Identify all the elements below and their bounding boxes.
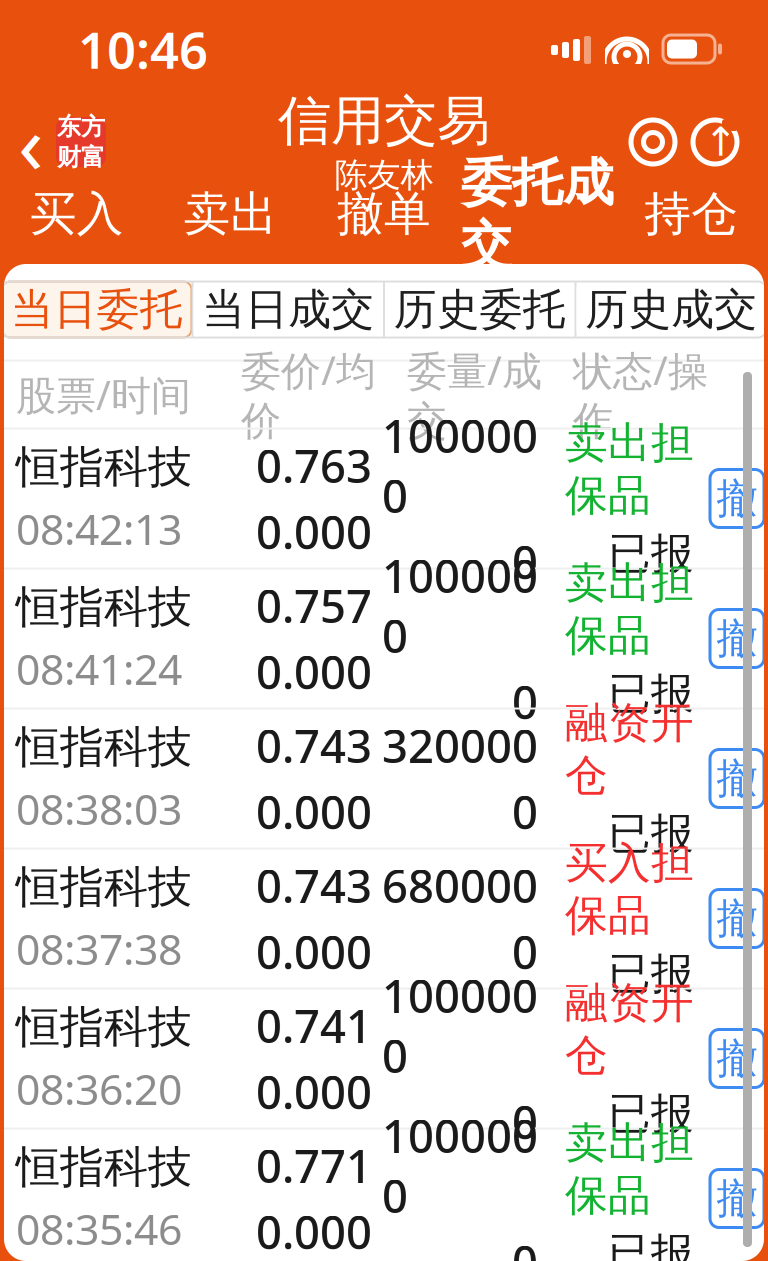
- staticText: 0.743: [256, 855, 372, 915]
- staticText: 0: [512, 781, 538, 842]
- button[interactable]: 撤: [710, 1169, 764, 1227]
- staticText: 融资开仓: [565, 977, 694, 1082]
- staticText: 撤: [716, 893, 757, 944]
- staticText: 委价/均价: [241, 343, 376, 446]
- staticText: 1000000: [382, 405, 538, 526]
- staticText: 历史委托: [394, 283, 566, 336]
- staticText: 已报: [608, 808, 694, 860]
- staticText: 恒指科技: [16, 580, 192, 634]
- staticText: 信用交易: [278, 88, 490, 154]
- staticText: 1000000: [382, 1105, 538, 1226]
- staticText: 0.000: [256, 1201, 372, 1261]
- button[interactable]: 设置: [622, 111, 684, 173]
- staticText: 东方: [57, 112, 105, 141]
- button[interactable]: 撤: [710, 749, 764, 807]
- staticText: 委量/成交: [407, 343, 542, 446]
- staticText: 卖出: [183, 185, 277, 243]
- staticText: 0.743: [256, 715, 372, 775]
- staticText: 已报: [608, 1228, 694, 1261]
- staticText: 持仓: [644, 185, 738, 243]
- staticText: 0.000: [256, 641, 372, 702]
- button[interactable]: 撤: [710, 609, 764, 667]
- staticText: 历史成交: [585, 283, 757, 336]
- button[interactable]: 恒指科技: [0, 989, 768, 1127]
- staticText: 0.771: [256, 1135, 372, 1195]
- button[interactable]: 当日成交: [193, 281, 383, 337]
- staticText: 1000000: [382, 545, 538, 666]
- button[interactable]: 委托成交: [461, 186, 614, 264]
- staticText: 撤: [716, 473, 757, 524]
- staticText: 08:35:46: [16, 1200, 182, 1257]
- staticText: 已报: [608, 1088, 694, 1140]
- button[interactable]: 持仓: [614, 186, 768, 264]
- staticText: 0.763: [256, 435, 372, 495]
- staticText: 680000: [382, 855, 538, 915]
- button[interactable]: 恒指科技: [0, 1129, 768, 1261]
- staticText: 08:38:03: [16, 780, 182, 837]
- staticText: 恒指科技: [16, 1140, 192, 1194]
- button[interactable]: 卖出: [154, 186, 307, 264]
- staticText: 1000000: [382, 965, 538, 1086]
- staticText: 撤: [716, 613, 757, 664]
- staticText: 恒指科技: [16, 720, 192, 774]
- staticText: 恒指科技: [16, 860, 192, 914]
- button[interactable]: 刷新: [684, 111, 746, 173]
- staticText: 当日成交: [202, 283, 374, 336]
- staticText: 0.000: [256, 921, 372, 982]
- staticText: 卖出担保品: [565, 417, 694, 522]
- staticText: 买入: [30, 185, 124, 243]
- staticText: 当日委托: [11, 283, 183, 336]
- staticText: 08:42:13: [16, 500, 182, 557]
- button[interactable]: 恒指科技: [0, 849, 768, 987]
- staticText: 0.741: [256, 995, 372, 1055]
- staticText: 状态/操作: [573, 343, 708, 446]
- staticText: 撤: [716, 1033, 757, 1084]
- button[interactable]: 恒指科技: [0, 709, 768, 847]
- staticText: 0: [512, 532, 538, 592]
- staticText: 0.000: [256, 1061, 372, 1122]
- staticText: 撤单: [337, 185, 431, 243]
- staticText: 320000: [382, 715, 538, 775]
- button[interactable]: 撤: [710, 1029, 764, 1087]
- staticText: 已报: [608, 948, 694, 1000]
- staticText: ↑: [704, 119, 738, 165]
- staticText: 0: [512, 1092, 538, 1152]
- button[interactable]: 返回: [0, 102, 120, 182]
- staticText: 卖出担保品: [565, 1117, 694, 1222]
- staticText: 恒指科技: [16, 1000, 192, 1054]
- staticText: 08:41:24: [16, 640, 182, 697]
- button[interactable]: 撤单: [307, 186, 461, 264]
- staticText: 卖出担保品: [565, 557, 694, 662]
- staticText: 陈友林: [334, 155, 433, 196]
- staticText: 撤: [716, 1173, 757, 1224]
- button[interactable]: 恒指科技: [0, 569, 768, 707]
- staticText: 股票/时间: [16, 368, 191, 421]
- staticText: 0: [512, 672, 538, 732]
- staticText: 08:37:38: [16, 920, 182, 977]
- button[interactable]: 撤: [710, 889, 764, 947]
- staticText: 0.000: [256, 781, 372, 842]
- staticText: 财富: [57, 142, 105, 172]
- button[interactable]: 历史委托: [385, 281, 574, 337]
- staticText: 委托成交: [461, 152, 614, 276]
- staticText: 已报: [608, 668, 694, 720]
- staticText: ‹: [18, 87, 44, 197]
- button[interactable]: 历史成交: [576, 281, 766, 337]
- staticText: 融资开仓: [565, 697, 694, 802]
- staticText: 撤: [716, 753, 757, 804]
- staticText: 0.757: [256, 575, 372, 635]
- staticText: 0: [512, 921, 538, 982]
- staticText: 已报: [608, 528, 694, 580]
- staticText: 0.000: [256, 501, 372, 562]
- button[interactable]: 当日委托: [2, 281, 191, 337]
- button[interactable]: 撤: [710, 469, 764, 527]
- button[interactable]: 买入: [0, 186, 154, 264]
- staticText: 10:46: [78, 15, 208, 83]
- staticText: 0: [512, 1232, 538, 1261]
- button[interactable]: 恒指科技: [0, 429, 768, 567]
- staticText: 08:36:20: [16, 1060, 182, 1117]
- staticText: 恒指科技: [16, 440, 192, 494]
- staticText: 买入担保品: [565, 837, 694, 942]
